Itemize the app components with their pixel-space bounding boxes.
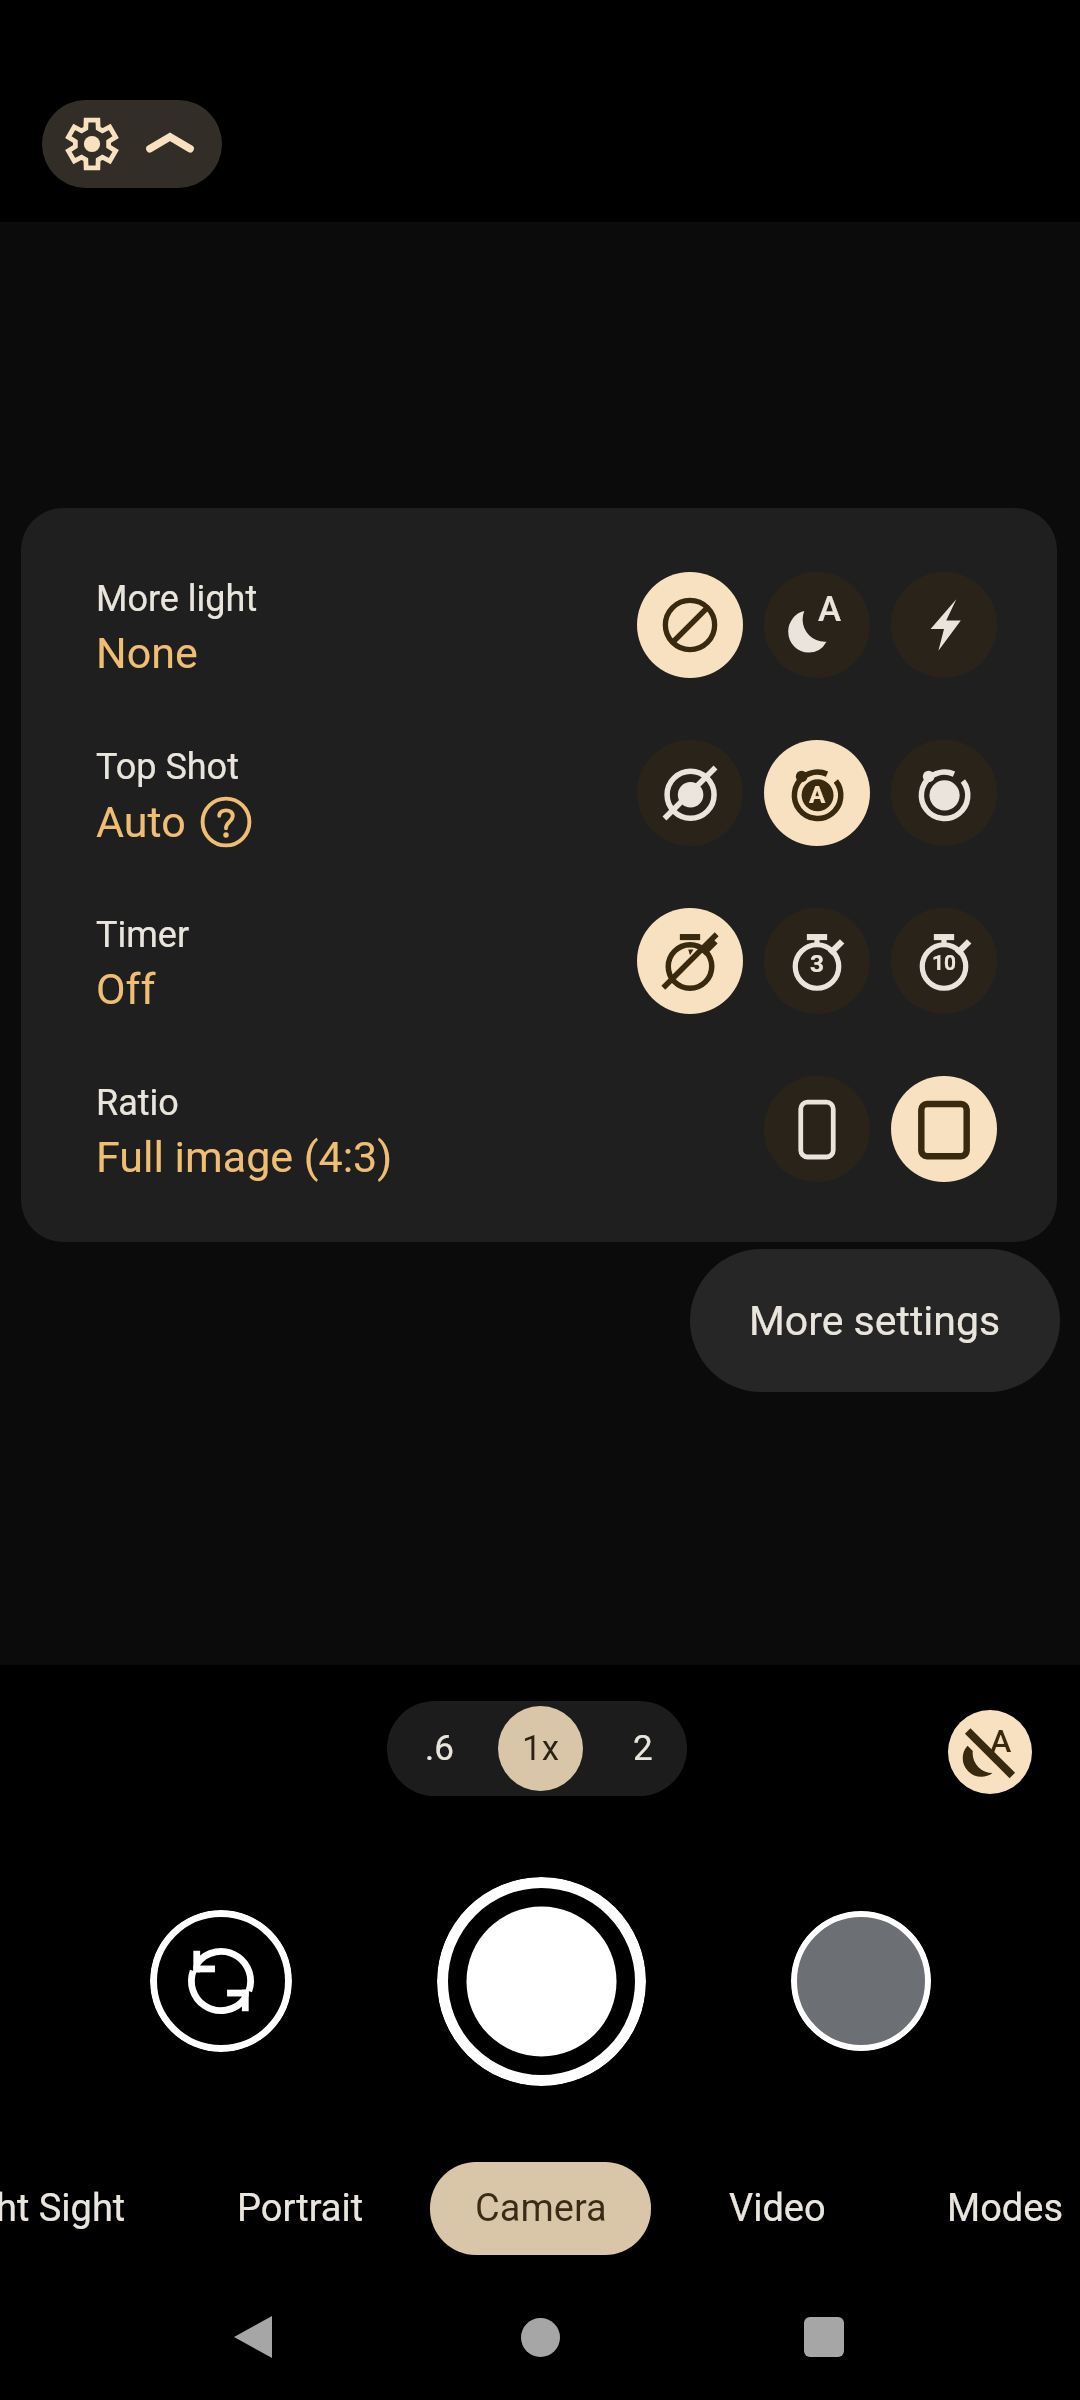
button[interactable]: Full image 4 by 3 ratio: [891, 1076, 997, 1182]
button[interactable]: Home: [496, 2293, 584, 2381]
staticText: 1x: [522, 1728, 560, 1769]
button[interactable]: .6: [393, 1701, 485, 1796]
staticText: 3: [810, 949, 824, 978]
button[interactable]: Top Shot auto: [764, 740, 870, 846]
button[interactable]: Modes: [923, 2162, 1080, 2255]
staticText: Portrait: [237, 2186, 364, 2231]
button[interactable]: More settings: [690, 1249, 1060, 1392]
button[interactable]: Portrait: [213, 2162, 388, 2255]
button[interactable]: No extra light: [637, 572, 743, 678]
button[interactable]: Back: [209, 2293, 297, 2381]
staticText: 10: [932, 951, 956, 975]
button[interactable]: Gallery: [791, 1911, 931, 2051]
staticText: ht Sight: [0, 2186, 126, 2231]
button[interactable]: Flash on: [891, 572, 997, 678]
button[interactable]: ht Sight: [0, 2162, 150, 2255]
button[interactable]: Camera settings: [42, 100, 222, 188]
button[interactable]: Timer off: [637, 908, 743, 1014]
staticText: Modes: [947, 2186, 1064, 2231]
button[interactable]: Night Sight auto: [764, 572, 870, 678]
button[interactable]: Video: [705, 2162, 850, 2255]
button[interactable]: Camera: [430, 2162, 651, 2255]
button[interactable]: 1x: [498, 1706, 583, 1791]
staticText: Ratio: [96, 1082, 179, 1124]
staticText: None: [96, 628, 198, 678]
button[interactable]: Top Shot on: [891, 740, 997, 846]
staticText: Timer: [96, 914, 190, 956]
staticText: More light: [96, 578, 258, 620]
staticText: Camera: [475, 2186, 607, 2231]
button[interactable]: Top Shot off: [637, 740, 743, 846]
staticText: Top Shot: [96, 746, 239, 788]
staticText: Auto: [96, 797, 186, 847]
staticText: A: [818, 589, 842, 630]
button[interactable]: Take photo: [437, 1877, 646, 2086]
button[interactable]: Switch camera: [150, 1910, 292, 2052]
staticText: Video: [729, 2186, 826, 2231]
staticText: Off: [96, 964, 156, 1014]
button[interactable]: 10 second timer: [891, 908, 997, 1014]
button[interactable]: 3 second timer: [764, 908, 870, 1014]
staticText: A: [990, 1722, 1012, 1760]
staticText: Full image (4:3): [96, 1132, 393, 1182]
button[interactable]: Full screen ratio: [764, 1076, 870, 1182]
button[interactable]: Recent apps: [780, 2293, 868, 2381]
button[interactable]: 2: [600, 1701, 685, 1796]
staticText: 2: [633, 1728, 653, 1769]
staticText: More settings: [749, 1297, 1001, 1345]
button[interactable]: Flash auto off: [948, 1710, 1032, 1794]
staticText: .6: [425, 1728, 454, 1769]
staticText: A: [809, 780, 826, 809]
